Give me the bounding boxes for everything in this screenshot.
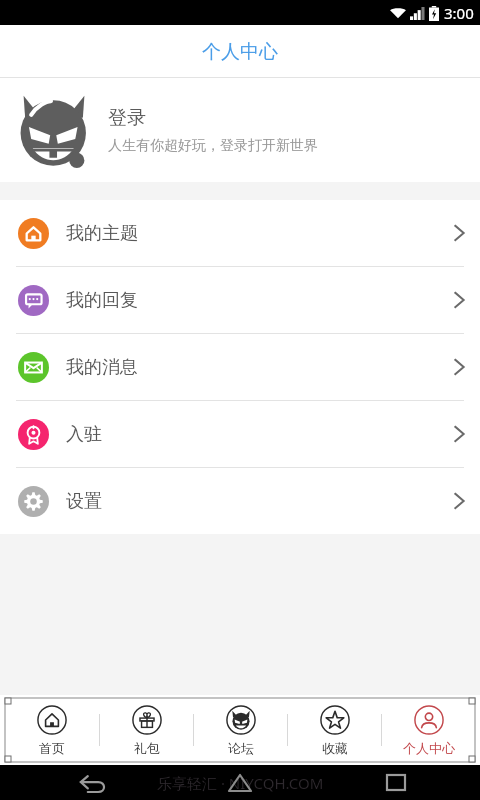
- staticText: 礼包: [134, 740, 160, 756]
- button[interactable]: 我的主题: [0, 200, 480, 266]
- staticText: 收藏: [322, 740, 348, 756]
- button[interactable]: 登录: [0, 78, 480, 182]
- staticText: 个人中心: [403, 740, 455, 756]
- staticText: 我的消息: [66, 356, 138, 379]
- staticText: 登录: [108, 106, 146, 130]
- button[interactable]: 论坛: [194, 698, 287, 762]
- staticText: 设置: [66, 490, 102, 513]
- button[interactable]: 我的回复: [0, 267, 480, 333]
- staticText: 论坛: [228, 740, 254, 756]
- staticText: 我的主题: [66, 222, 138, 245]
- staticText: 首页: [39, 740, 65, 756]
- button[interactable]: 礼包: [100, 698, 193, 762]
- button[interactable]: 设置: [0, 468, 480, 534]
- staticText: 入驻: [66, 423, 102, 446]
- button[interactable]: 个人中心: [382, 698, 475, 762]
- button[interactable]: 我的消息: [0, 334, 480, 400]
- button[interactable]: 收藏: [288, 698, 381, 762]
- staticText: 3:00: [444, 3, 474, 23]
- staticText: 个人中心: [202, 40, 278, 64]
- staticText: 人生有你超好玩，登录打开新世界: [108, 137, 318, 155]
- staticText: 乐享轻汇 · NIYCQH.COM: [157, 773, 324, 793]
- button[interactable]: 首页: [5, 698, 99, 762]
- button[interactable]: 入驻: [0, 401, 480, 467]
- staticText: 我的回复: [66, 289, 138, 312]
